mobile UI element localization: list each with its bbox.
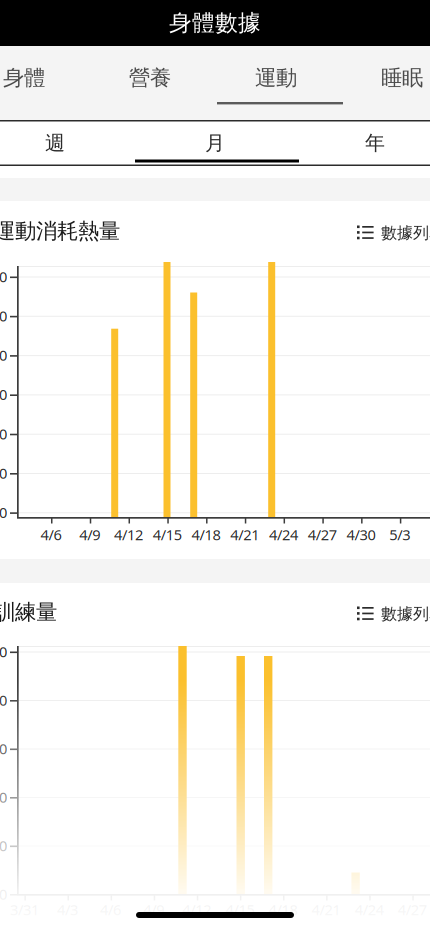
button[interactable]: 運動 [213,58,339,98]
staticText: 600 [0,306,7,326]
staticText: 4/12 [114,525,143,544]
button[interactable]: 年 [295,122,430,164]
staticText: 4/24 [269,525,298,544]
staticText: 4/18 [191,525,220,544]
staticText: 1000 [0,836,7,855]
staticText: 4/9 [143,900,164,919]
staticText: 年 [365,131,385,155]
staticText: 數據列表 [381,604,430,624]
staticText: 2000 [0,787,7,807]
staticText: 4/18 [268,900,297,919]
staticText: 4/15 [225,900,254,919]
staticText: 運動消耗熱量 [0,218,120,244]
staticText: 4/9 [79,525,100,544]
button[interactable]: 週 [0,122,135,164]
button[interactable]: 睡眠 [339,58,430,98]
staticText: 身體數據 [169,9,261,37]
staticText: 0 [0,503,7,522]
staticText: 營養 [129,65,171,91]
staticText: 200 [0,463,7,483]
button[interactable]: 身體 [0,58,87,98]
staticText: 400 [0,385,7,404]
staticText: 0 [0,884,7,904]
staticText: 3000 [0,739,7,758]
staticText: 700 [0,267,7,286]
button[interactable]: 數據列表 [357,219,430,247]
staticText: 5/3 [389,525,410,544]
staticText: 睡眠 [381,65,423,91]
button[interactable]: 月 [135,122,295,164]
staticText: 4000 [0,690,7,710]
staticText: 月 [205,131,225,155]
staticText: 訓練量 [0,599,57,625]
staticText: 4/30 [347,525,376,544]
staticText: 4/12 [182,900,211,919]
staticText: 4/15 [153,525,182,544]
staticText: 運動 [255,65,297,91]
staticText: 5000 [0,642,7,661]
button[interactable]: 營養 [87,58,213,98]
staticText: 4/6 [40,525,61,544]
staticText: 數據列表 [381,223,430,243]
staticText: 身體 [3,65,45,91]
staticText: 4/21 [230,525,259,544]
staticText: 500 [0,345,7,365]
staticText: 300 [0,424,7,443]
staticText: 4/27 [308,525,337,544]
button[interactable]: 數據列表 [357,600,430,628]
staticText: 週 [45,131,65,155]
